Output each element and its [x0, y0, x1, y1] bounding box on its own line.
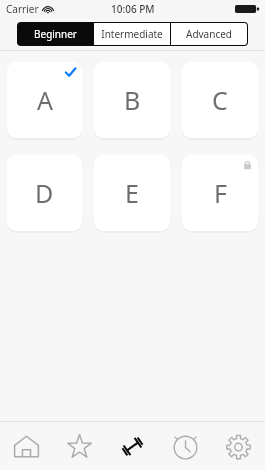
staticText: F: [214, 176, 227, 210]
button[interactable]: Favorites: [53, 422, 106, 470]
staticText: Intermediate: [101, 27, 163, 41]
button[interactable]: Workouts: [106, 422, 159, 470]
button[interactable]: A: [7, 62, 82, 138]
staticText: A: [37, 83, 53, 117]
staticText: D: [35, 176, 54, 210]
button[interactable]: Timer: [159, 422, 212, 470]
button[interactable]: C: [182, 62, 258, 138]
button[interactable]: Home: [0, 422, 53, 470]
staticText: Carrier: [6, 2, 39, 16]
button[interactable]: Intermediate: [94, 23, 170, 45]
staticText: Beginner: [34, 27, 77, 41]
staticText: Advanced: [186, 27, 232, 41]
button[interactable]: B: [94, 62, 170, 138]
button[interactable]: E: [94, 155, 170, 231]
staticText: C: [212, 83, 228, 117]
staticText: 10:06 PM: [111, 2, 155, 16]
button[interactable]: F: [182, 155, 258, 231]
button[interactable]: Advanced: [171, 23, 247, 45]
staticText: B: [124, 83, 141, 117]
button[interactable]: Settings: [212, 422, 265, 470]
button[interactable]: Beginner: [18, 23, 93, 45]
button[interactable]: D: [7, 155, 82, 231]
staticText: E: [125, 176, 139, 210]
